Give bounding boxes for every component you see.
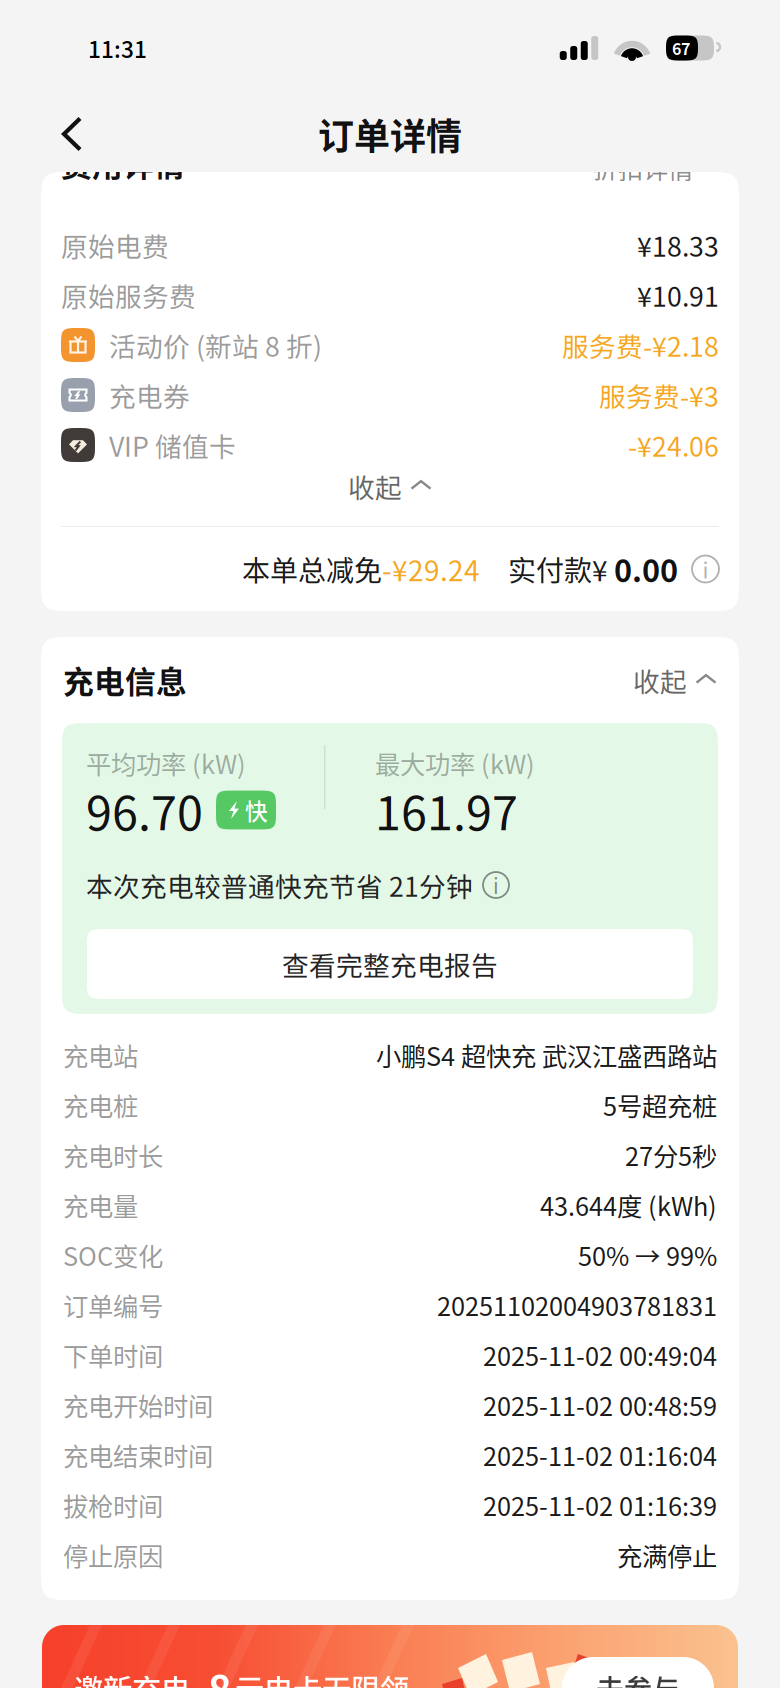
staticText: 11:31 [88, 32, 147, 64]
staticText: 充电量 [63, 1187, 138, 1223]
staticText: 原始电费 [61, 226, 169, 264]
staticText: -¥2.18 [643, 326, 719, 364]
staticText: 去参与 [596, 1668, 680, 1688]
staticText: 67 [672, 36, 690, 60]
staticText: -¥3 [680, 376, 719, 414]
staticText: 邀新充电 [74, 1667, 190, 1688]
staticText: VIP 储值卡 [109, 426, 236, 464]
staticText: SOC变化 [63, 1237, 163, 1273]
staticText: i [493, 870, 499, 900]
staticText: 5号超充桩 [603, 1087, 717, 1123]
staticText: 费用详情 [61, 141, 185, 185]
staticText: 收起 [348, 467, 402, 505]
staticText: 2025-11-02 00:48:59 [483, 1387, 717, 1423]
staticText: ¥18.33 [637, 226, 719, 264]
staticText: 服务费 [599, 376, 680, 414]
staticText: 停止原因 [63, 1537, 163, 1573]
button[interactable]: 收起 [633, 661, 717, 699]
staticText: 元电卡无限领 [235, 1667, 409, 1688]
staticText: 活动价 (新站 8 折) [109, 326, 322, 364]
staticText: 0.00 [614, 547, 678, 591]
staticText: 折扣详情 [593, 149, 693, 186]
staticText: -¥29.24 [382, 549, 480, 589]
staticText: 43.644度 (kWh) [540, 1187, 717, 1223]
staticText: 27分5秒 [625, 1137, 717, 1173]
staticText: 平均功率 (kW) [86, 745, 246, 781]
staticText: 小鹏S4 超快充 武汉江盛西路站 [376, 1037, 717, 1073]
staticText: 下单时间 [63, 1337, 163, 1373]
staticText: 96.70 [86, 776, 203, 844]
button[interactable]: 查看完整充电报告 [87, 929, 693, 999]
staticText: 拔枪时间 [63, 1487, 163, 1523]
staticText: 收起 [633, 661, 687, 699]
staticText: 订单详情 [318, 108, 462, 160]
staticText: 50% → 99% [578, 1237, 717, 1273]
staticText: 实付款¥ [508, 549, 608, 589]
staticText: i [702, 553, 708, 585]
staticText: 本单总减免 [242, 549, 382, 589]
button[interactable]: 折扣详情 [593, 175, 719, 215]
staticText: 2025-11-02 01:16:39 [483, 1487, 717, 1523]
staticText: 2025-11-02 00:49:04 [483, 1337, 717, 1373]
staticText: 本次充电较普通快充节省 21分钟 [86, 866, 473, 904]
staticText: 161.97 [375, 776, 518, 844]
staticText: 服务费 [562, 326, 643, 364]
staticText: 充满停止 [617, 1537, 717, 1573]
staticText: 充电站 [63, 1037, 138, 1073]
staticText: 充电结束时间 [63, 1437, 213, 1473]
staticText: 最大功率 (kW) [375, 745, 535, 781]
staticText: 订单编号 [63, 1287, 163, 1323]
staticText: 充电时长 [63, 1137, 163, 1173]
staticText: 20251102004903781831 [437, 1287, 717, 1323]
button[interactable]: 收起 [348, 470, 432, 514]
staticText: 充电桩 [63, 1087, 138, 1123]
staticText: 2025-11-02 01:16:04 [483, 1437, 717, 1473]
button[interactable]: 返回 [42, 104, 102, 164]
staticText: 充电信息 [63, 658, 187, 702]
staticText: 充电券 [109, 376, 190, 414]
staticText: -¥24.06 [628, 426, 719, 464]
staticText: ¥10.91 [637, 276, 719, 314]
staticText: 原始服务费 [61, 276, 196, 314]
staticText: 充电开始时间 [63, 1387, 213, 1423]
staticText: 查看完整充电报告 [282, 945, 498, 983]
staticText: 8 [208, 1659, 232, 1688]
button[interactable]: 邀新充电 [42, 1625, 738, 1688]
staticText: 快 [245, 794, 268, 826]
